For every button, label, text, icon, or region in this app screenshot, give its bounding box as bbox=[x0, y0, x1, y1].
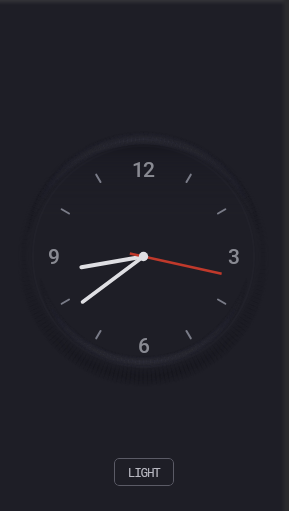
staticText: 3 bbox=[228, 245, 239, 270]
staticText: LIGHT bbox=[128, 464, 161, 480]
staticText: 6 bbox=[138, 334, 149, 359]
staticText: 12 bbox=[132, 158, 154, 183]
button[interactable]: LIGHT bbox=[114, 458, 174, 486]
staticText: 9 bbox=[48, 245, 59, 270]
